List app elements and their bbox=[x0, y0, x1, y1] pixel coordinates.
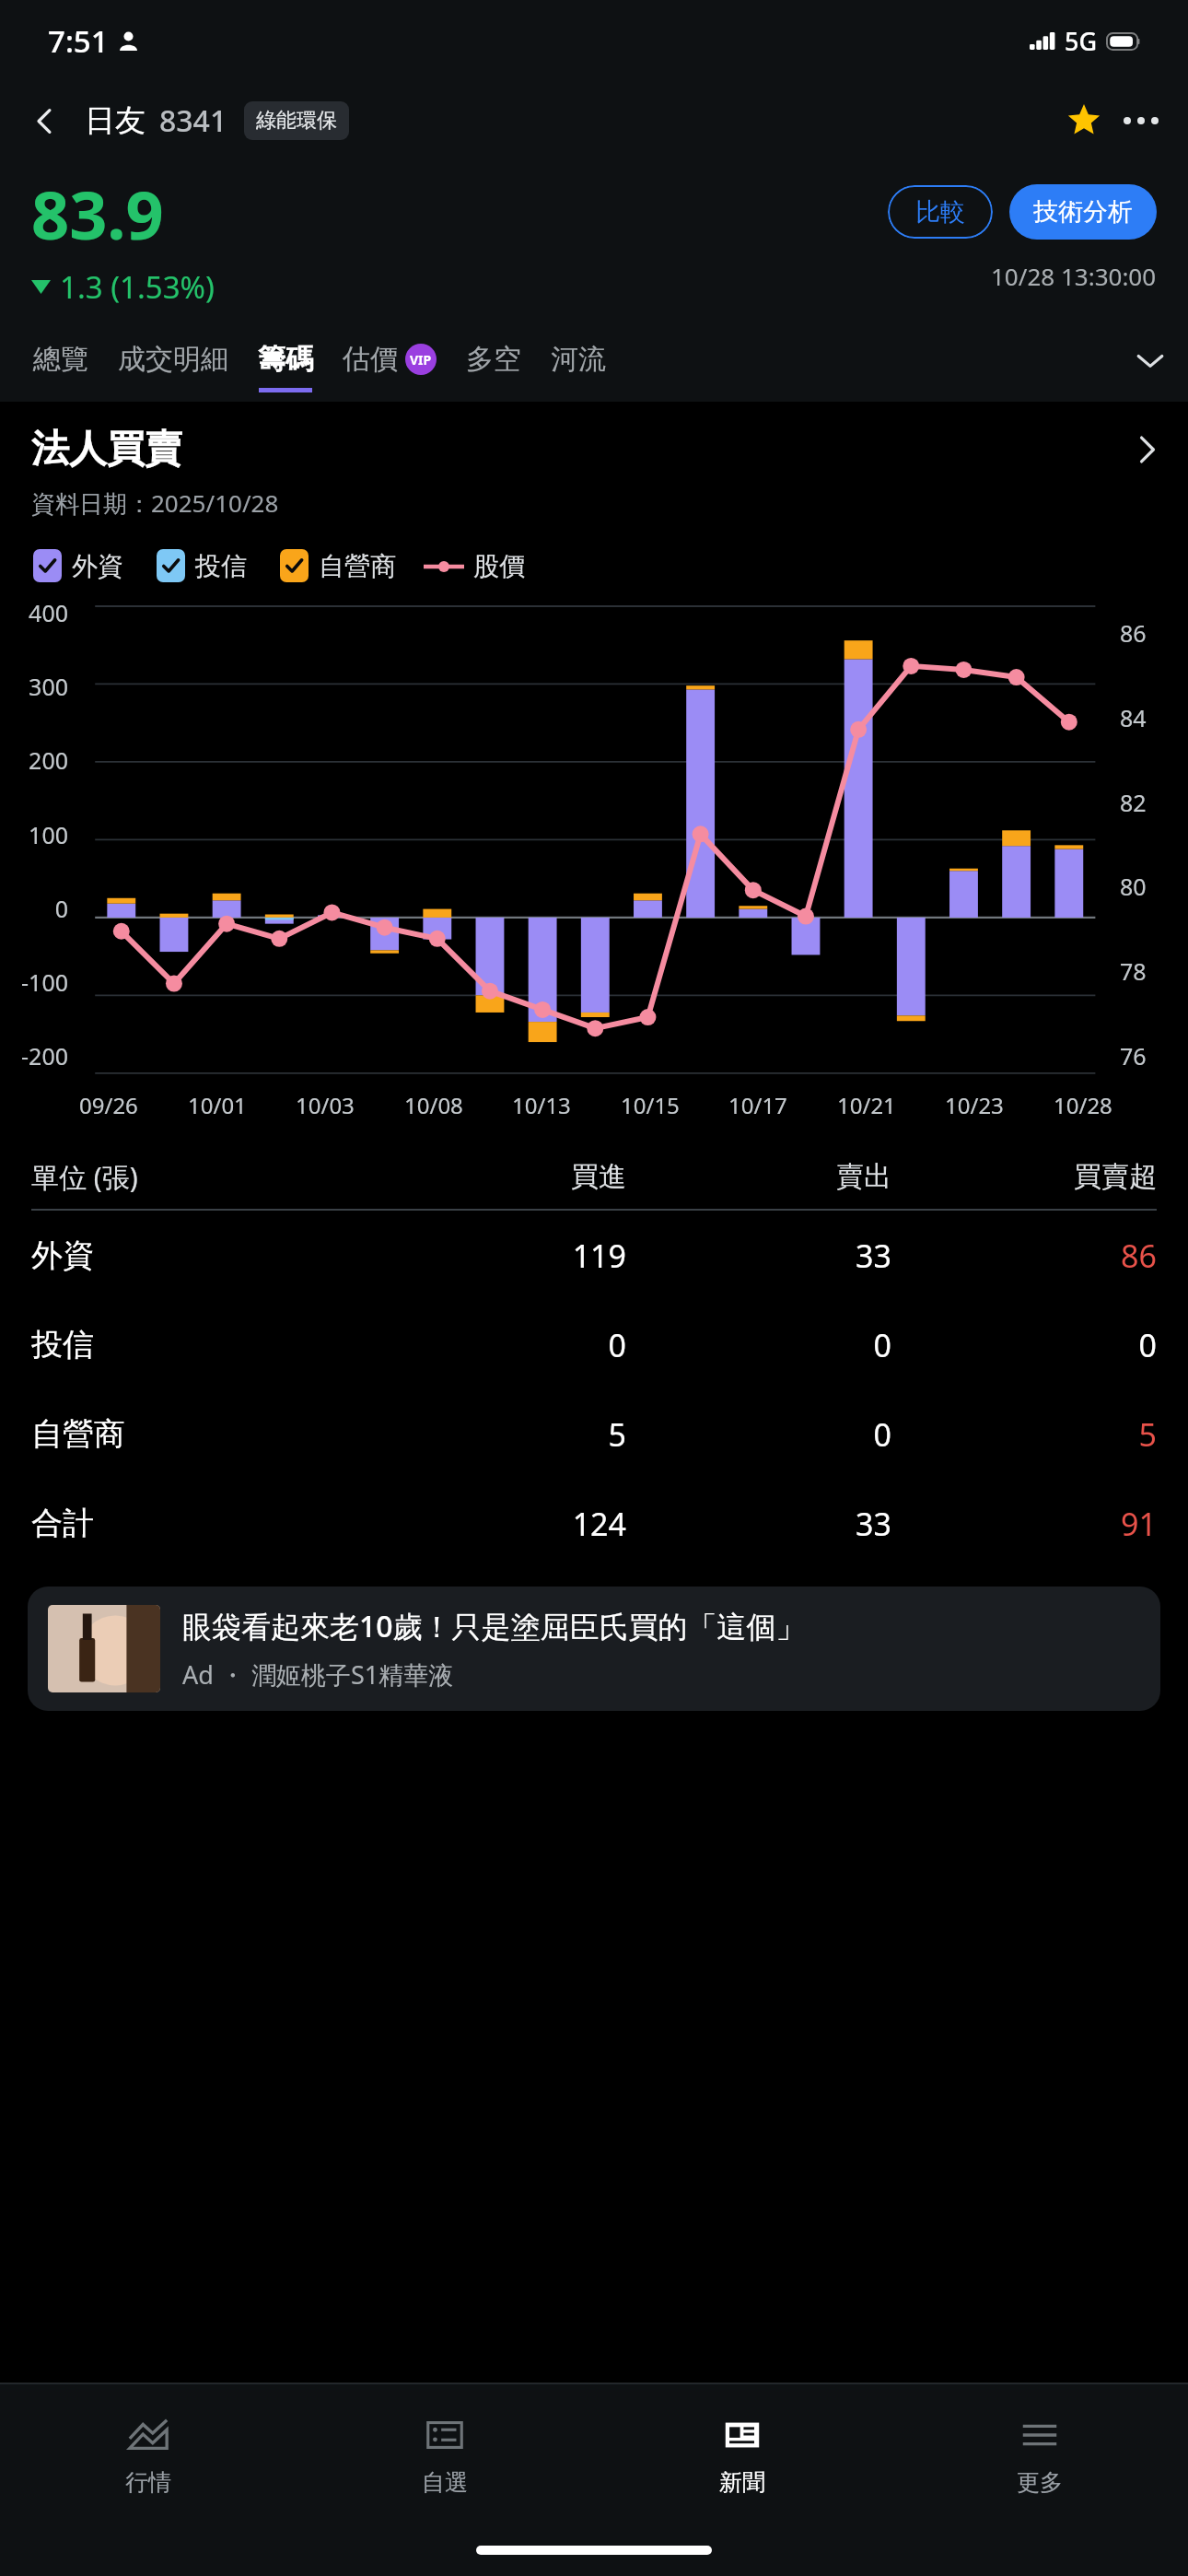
staticText: 10/28 13:30:00 bbox=[991, 260, 1157, 292]
button[interactable]: 綠能環保 bbox=[244, 101, 349, 140]
staticText: 買賣超 bbox=[891, 1159, 1157, 1194]
staticText: 10/13 bbox=[512, 1090, 571, 1120]
staticText: 自營商 bbox=[319, 550, 396, 582]
staticText: 日友 bbox=[85, 101, 146, 140]
staticText: 80 bbox=[1120, 871, 1147, 902]
button[interactable]: 估價 bbox=[330, 342, 449, 402]
staticText: 200 bbox=[29, 744, 68, 776]
button[interactable]: 投信 bbox=[31, 1300, 1157, 1389]
staticText: 外資 bbox=[72, 550, 123, 582]
staticText: 多空 bbox=[466, 342, 521, 377]
staticText: 91 bbox=[891, 1503, 1157, 1545]
staticText: 投信 bbox=[195, 550, 247, 582]
staticText: 1.3 (1.53%) bbox=[60, 266, 215, 308]
staticText: 眼袋看起來老10歲！只是塗屈臣氏買的「這個」 bbox=[182, 1606, 806, 1646]
button[interactable]: 比較 bbox=[888, 185, 993, 239]
staticText: 賣出 bbox=[626, 1159, 891, 1194]
staticText: 0 bbox=[54, 893, 68, 924]
staticText: 綠能環保 bbox=[256, 108, 337, 134]
staticText: 成交明細 bbox=[118, 342, 228, 377]
button[interactable]: Favorite bbox=[1055, 92, 1112, 149]
staticText: -200 bbox=[21, 1040, 68, 1071]
staticText: 股價 bbox=[473, 550, 525, 582]
button[interactable]: 合計 bbox=[31, 1479, 1157, 1568]
staticText: 買進 bbox=[361, 1159, 626, 1194]
staticText: 法人買賣 bbox=[31, 426, 182, 474]
staticText: VIP bbox=[410, 351, 432, 369]
button[interactable]: 更多 bbox=[891, 2384, 1188, 2524]
staticText: 行情 bbox=[125, 2468, 171, 2497]
staticText: 10/15 bbox=[621, 1090, 680, 1120]
staticText: 10/21 bbox=[837, 1090, 896, 1120]
button[interactable]: 眼袋看起來老10歲！只是塗屈臣氏買的「這個」 bbox=[28, 1587, 1160, 1711]
staticText: 比較 bbox=[915, 196, 965, 228]
staticText: 119 bbox=[361, 1235, 626, 1277]
staticText: 5G bbox=[1065, 24, 1098, 58]
staticText: 10/28 bbox=[1054, 1090, 1112, 1120]
staticText: 5 bbox=[891, 1413, 1157, 1456]
button[interactable]: 自選 bbox=[297, 2384, 593, 2524]
button[interactable]: 自營商 bbox=[31, 1389, 1157, 1479]
staticText: 自營商 bbox=[31, 1414, 361, 1454]
staticText: 5 bbox=[361, 1413, 626, 1456]
staticText: 8341 bbox=[159, 100, 227, 141]
staticText: 自選 bbox=[422, 2468, 468, 2497]
button[interactable]: 新聞 bbox=[593, 2384, 891, 2524]
staticText: 86 bbox=[1120, 617, 1147, 649]
staticText: 100 bbox=[29, 819, 68, 850]
staticText: 技術分析 bbox=[1033, 196, 1133, 228]
staticText: 10/03 bbox=[296, 1090, 355, 1120]
staticText: 河流 bbox=[551, 342, 606, 377]
staticText: Ad ・ 潤姬桃子S1精華液 bbox=[182, 1657, 454, 1692]
staticText: 124 bbox=[361, 1503, 626, 1545]
button[interactable]: 自營商 bbox=[280, 549, 396, 582]
staticText: 84 bbox=[1120, 702, 1147, 733]
button[interactable]: 外資 bbox=[31, 1211, 1157, 1300]
button[interactable]: 多空 bbox=[453, 342, 534, 402]
staticText: 更多 bbox=[1017, 2468, 1063, 2497]
button[interactable]: More options bbox=[1112, 92, 1170, 149]
staticText: 0 bbox=[626, 1413, 891, 1456]
staticText: 7:51 bbox=[48, 20, 109, 62]
staticText: 33 bbox=[626, 1503, 891, 1545]
button[interactable]: 成交明細 bbox=[105, 342, 241, 402]
button[interactable]: 投信 bbox=[157, 549, 247, 582]
button[interactable]: 籌碼 bbox=[245, 342, 326, 402]
button[interactable]: Show more tabs bbox=[1122, 332, 1179, 389]
staticText: 估價 bbox=[343, 342, 398, 377]
staticText: 新聞 bbox=[719, 2468, 765, 2497]
button[interactable]: 外資 bbox=[33, 549, 123, 582]
staticText: 籌碼 bbox=[258, 342, 313, 377]
staticText: 0 bbox=[891, 1324, 1157, 1366]
staticText: 300 bbox=[29, 671, 68, 702]
button[interactable]: 總覽 bbox=[20, 342, 101, 402]
button[interactable]: 法人買賣 bbox=[31, 426, 1162, 474]
staticText: -100 bbox=[21, 966, 68, 998]
staticText: 82 bbox=[1120, 787, 1147, 818]
staticText: 10/17 bbox=[728, 1090, 787, 1120]
staticText: 10/23 bbox=[945, 1090, 1004, 1120]
staticText: 資料日期：2025/10/28 bbox=[31, 486, 279, 520]
staticText: 78 bbox=[1120, 955, 1147, 987]
staticText: 單位 (張) bbox=[31, 1158, 361, 1196]
staticText: 總覽 bbox=[33, 342, 88, 377]
button[interactable]: 行情 bbox=[0, 2384, 297, 2524]
staticText: 09/26 bbox=[79, 1090, 138, 1120]
staticText: 33 bbox=[626, 1235, 891, 1277]
staticText: 10/01 bbox=[188, 1090, 247, 1120]
staticText: 86 bbox=[891, 1235, 1157, 1277]
staticText: 合計 bbox=[31, 1504, 361, 1543]
staticText: 400 bbox=[29, 597, 68, 628]
staticText: 76 bbox=[1120, 1040, 1147, 1071]
staticText: 0 bbox=[626, 1324, 891, 1366]
button[interactable]: 股價 bbox=[424, 550, 525, 582]
button[interactable]: 技術分析 bbox=[1009, 184, 1157, 240]
staticText: 83.9 bbox=[31, 169, 164, 259]
staticText: 10/08 bbox=[404, 1090, 463, 1120]
staticText: 外資 bbox=[31, 1235, 361, 1275]
staticText: 投信 bbox=[31, 1325, 361, 1364]
button[interactable]: 河流 bbox=[538, 342, 619, 402]
staticText: 0 bbox=[361, 1324, 626, 1366]
button[interactable]: Back bbox=[18, 95, 70, 146]
